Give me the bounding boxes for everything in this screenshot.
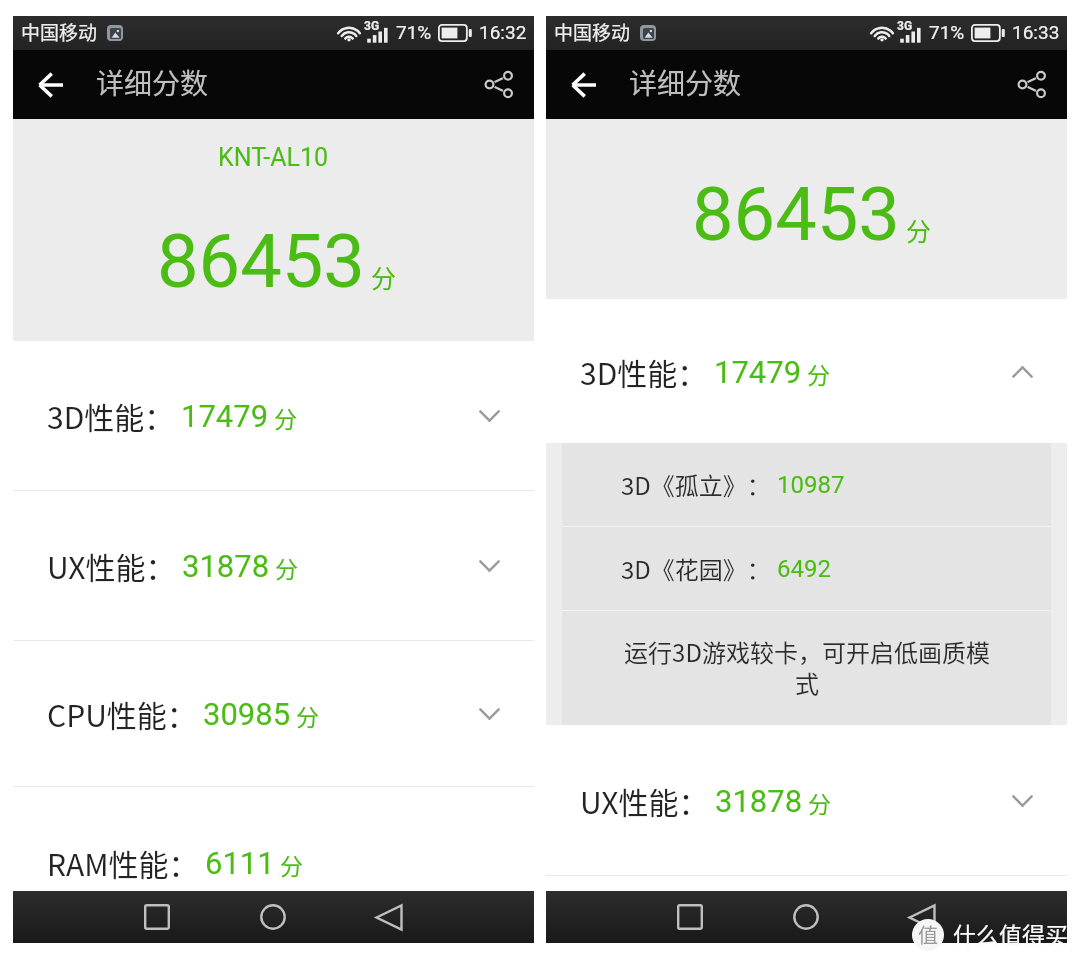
staticText: 详细分数	[96, 62, 209, 103]
staticText: KNT-AL10	[218, 143, 329, 172]
button[interactable]: 3D《孤立》：	[562, 443, 1051, 526]
staticText: 71%	[396, 21, 432, 43]
button[interactable]: Home	[228, 891, 318, 943]
staticText: 分	[906, 212, 932, 248]
staticText: 分	[371, 259, 397, 295]
staticText: 30985	[203, 696, 291, 732]
staticText: 分	[280, 848, 303, 881]
staticText: 3D性能：	[580, 350, 708, 393]
button[interactable]: Back	[546, 50, 620, 119]
button[interactable]: 3D性能：	[546, 299, 1067, 443]
staticText: 31878	[182, 548, 270, 584]
button[interactable]: Back	[344, 891, 434, 943]
staticText: 3G	[897, 19, 913, 33]
staticText: UX性能：	[47, 544, 176, 587]
staticText: 分	[275, 551, 298, 584]
staticText: CPU性能：	[47, 692, 197, 735]
staticText: 3D性能：	[47, 394, 175, 437]
staticText: 86453	[157, 218, 365, 305]
button[interactable]: Share	[995, 50, 1067, 119]
staticText: 86453	[692, 171, 900, 258]
staticText: 什么值得买	[953, 917, 1068, 950]
button[interactable]: Back	[13, 50, 87, 119]
button[interactable]: Recents	[645, 891, 735, 943]
staticText: 3D《孤立》：	[621, 467, 771, 502]
staticText: 中国移动	[554, 18, 631, 46]
button[interactable]: Back	[877, 891, 967, 943]
staticText: 17479	[714, 354, 802, 390]
button[interactable]: Share	[462, 50, 534, 119]
staticText: 31878	[715, 783, 803, 819]
staticText: 6492	[777, 555, 831, 583]
staticText: 详细分数	[629, 62, 742, 103]
staticText: 71%	[929, 21, 965, 43]
button[interactable]: Recents	[112, 891, 202, 943]
staticText: 运行3D游戏较卡，可开启低画质模式	[624, 634, 990, 700]
staticText: 16:32	[479, 21, 527, 43]
button[interactable]: UX性能：	[13, 491, 534, 640]
staticText: 值	[918, 920, 938, 949]
staticText: RAM性能：	[47, 841, 199, 884]
button[interactable]: UX性能：	[546, 725, 1067, 875]
staticText: 分	[274, 401, 297, 434]
button[interactable]: CPU性能：	[13, 641, 534, 786]
staticText: 分	[296, 699, 319, 732]
staticText: 16:33	[1012, 21, 1060, 43]
staticText: 6111	[205, 845, 275, 881]
button[interactable]: 3D性能：	[13, 341, 534, 490]
button[interactable]: Home	[761, 891, 851, 943]
staticText: UX性能：	[580, 779, 709, 822]
staticText: 10987	[777, 471, 845, 499]
staticText: 分	[808, 786, 831, 819]
staticText: 中国移动	[21, 18, 98, 46]
staticText: 3G	[364, 19, 380, 33]
staticText: 3D《花园》：	[621, 551, 771, 586]
staticText: 17479	[181, 398, 269, 434]
button[interactable]: 3D《花园》：	[562, 527, 1051, 610]
staticText: 分	[807, 357, 830, 390]
